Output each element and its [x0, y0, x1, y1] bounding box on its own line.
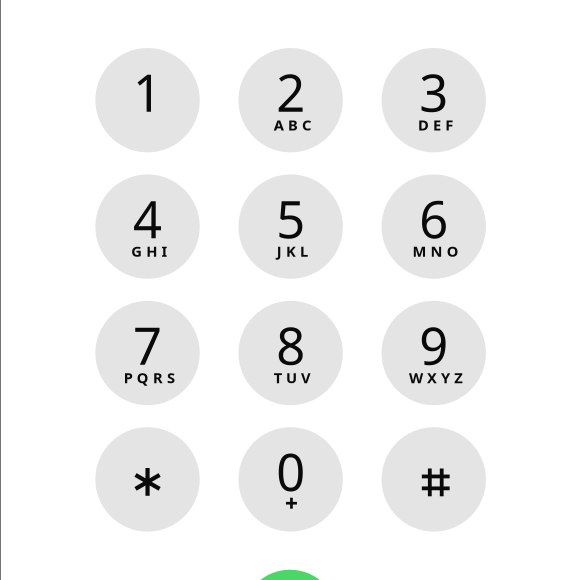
button[interactable]: 2 — [238, 48, 343, 152]
staticText: V — [301, 368, 311, 387]
staticText: 5 — [276, 185, 305, 252]
staticText: B — [288, 115, 298, 134]
staticText: A — [274, 115, 284, 134]
staticText: L — [300, 241, 308, 261]
staticText: G — [131, 241, 142, 261]
staticText: 8 — [276, 311, 305, 379]
staticText: Q — [137, 368, 149, 387]
staticText: T — [274, 368, 282, 387]
button[interactable]: 5 — [238, 174, 343, 279]
button[interactable] — [382, 427, 486, 532]
staticText: X — [427, 368, 437, 387]
staticText: Z — [454, 368, 462, 387]
staticText: U — [286, 368, 297, 387]
staticText: 2 — [276, 59, 305, 126]
staticText: F — [445, 115, 453, 134]
button[interactable]: 6 — [382, 174, 486, 279]
staticText: S — [167, 368, 175, 387]
button[interactable]: 3 — [382, 48, 486, 152]
staticText: O — [447, 241, 459, 261]
staticText: 6 — [419, 185, 448, 252]
staticText: H — [146, 241, 157, 261]
staticText: M — [412, 241, 426, 261]
staticText: 1 — [133, 59, 162, 126]
button[interactable]: 1 — [95, 48, 200, 152]
button[interactable]: 7 — [95, 301, 200, 405]
button[interactable]: 0 — [238, 427, 343, 532]
staticText: 0 — [276, 438, 305, 505]
staticText: 4 — [133, 185, 162, 252]
button[interactable]: 9 — [382, 301, 486, 405]
staticText: E — [433, 115, 441, 134]
staticText: D — [418, 115, 429, 134]
staticText: I — [161, 241, 167, 261]
staticText: J — [277, 241, 282, 261]
staticText: W — [409, 368, 423, 387]
button[interactable]: 4 — [95, 174, 200, 279]
button[interactable] — [95, 427, 200, 532]
staticText: 3 — [419, 59, 448, 126]
staticText: Y — [441, 368, 450, 387]
staticText: C — [302, 115, 311, 134]
staticText: P — [124, 368, 133, 387]
button[interactable]: Call — [242, 570, 338, 580]
button[interactable]: 8 — [238, 301, 343, 405]
staticText: K — [286, 241, 296, 261]
staticText: R — [153, 368, 163, 387]
staticText: 9 — [419, 311, 448, 379]
staticText: 7 — [133, 311, 162, 379]
staticText: N — [431, 241, 443, 261]
